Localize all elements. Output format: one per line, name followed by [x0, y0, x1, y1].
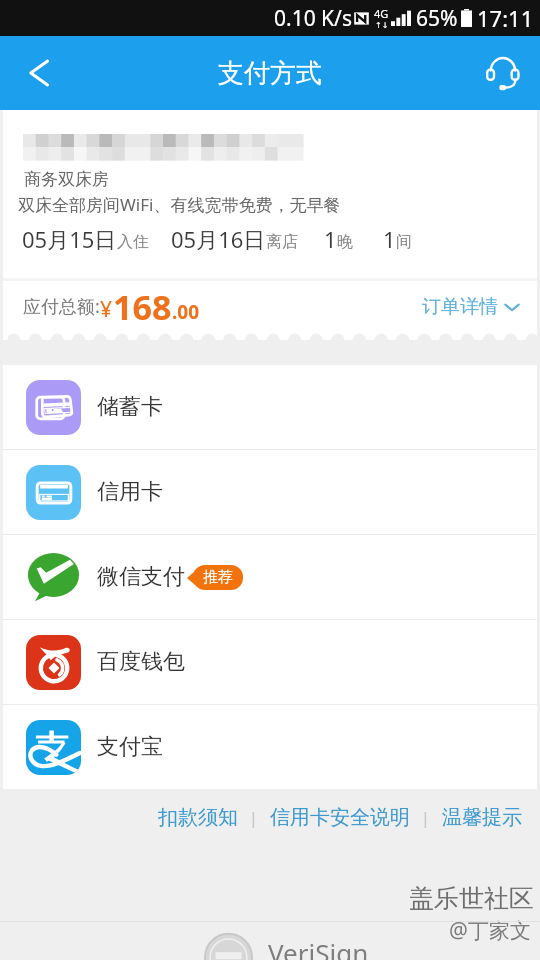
- staticText: 支付宝: [97, 733, 163, 761]
- staticText: |: [240, 806, 268, 829]
- staticText: 离店: [266, 232, 298, 252]
- staticText: 盖乐世社区: [409, 883, 534, 914]
- button[interactable]: 订单详情: [422, 295, 520, 319]
- button[interactable]: Customer service: [466, 36, 540, 110]
- staticText: 入住: [117, 232, 149, 252]
- staticText: 1: [324, 224, 337, 254]
- staticText: 双床全部房间WiFi、有线宽带免费，无早餐: [18, 193, 341, 216]
- button[interactable]: 微信支付: [3, 535, 537, 619]
- staticText: .00: [172, 299, 200, 325]
- button[interactable]: 百度钱包: [3, 620, 537, 704]
- button[interactable]: 信用卡安全说明: [268, 801, 412, 834]
- staticText: 储蓄卡: [97, 393, 163, 421]
- staticText: 05月15日: [22, 224, 117, 254]
- staticText: 微信支付: [97, 563, 185, 591]
- staticText: 支付方式: [218, 57, 322, 90]
- staticText: 05月16日: [171, 224, 266, 254]
- staticText: @丁家文: [449, 916, 531, 945]
- button[interactable]: 扣款须知: [156, 801, 240, 834]
- staticText: 应付总额:: [23, 294, 100, 319]
- staticText: 晚: [337, 232, 353, 252]
- staticText: VeriSign: [268, 935, 369, 960]
- staticText: 168: [113, 284, 172, 330]
- button[interactable]: Back: [0, 36, 82, 110]
- button[interactable]: 支付宝: [3, 705, 537, 789]
- button[interactable]: 储蓄卡: [3, 365, 537, 449]
- staticText: 1: [383, 224, 396, 254]
- staticText: 间: [396, 232, 412, 252]
- staticText: 17:11: [477, 3, 534, 33]
- staticText: |: [412, 806, 440, 829]
- staticText: 0.10 K/s: [274, 4, 352, 33]
- staticText: 信用卡: [97, 478, 163, 506]
- staticText: 百度钱包: [97, 648, 185, 676]
- staticText: ¥: [100, 295, 113, 324]
- staticText: 4G: [374, 6, 389, 21]
- staticText: 订单详情: [422, 295, 498, 319]
- button[interactable]: 温馨提示: [440, 801, 524, 834]
- staticText: ↑↓: [375, 21, 389, 30]
- staticText: 65%: [416, 4, 458, 33]
- button[interactable]: 信用卡: [3, 450, 537, 534]
- staticText: 商务双床房: [24, 169, 109, 190]
- staticText: 推荐: [203, 568, 233, 587]
